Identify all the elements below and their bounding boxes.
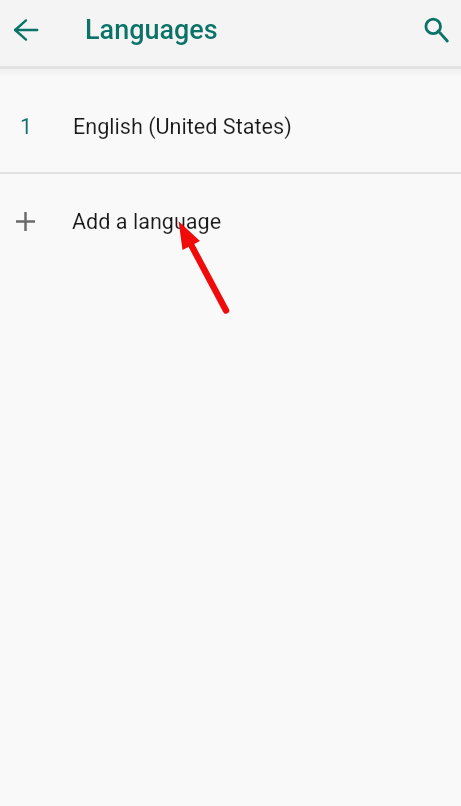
staticText: English (United States) xyxy=(73,114,292,139)
button[interactable]: 1 xyxy=(0,69,461,172)
staticText: Languages xyxy=(85,14,218,46)
staticText: 1 xyxy=(20,114,33,139)
button[interactable]: Back xyxy=(2,6,50,54)
button[interactable]: Add a language xyxy=(0,174,461,270)
button[interactable]: Search xyxy=(412,5,460,53)
staticText: Add a language xyxy=(72,209,222,234)
